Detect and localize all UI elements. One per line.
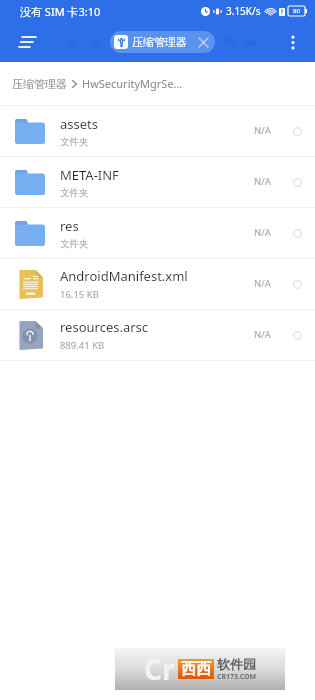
button[interactable]: res: [0, 208, 315, 258]
staticText: N/A: [254, 328, 271, 341]
staticText: N/A: [254, 175, 271, 188]
staticText: 没有 SIM 卡3:10: [20, 4, 101, 19]
button[interactable]: 压缩管理器: [110, 31, 215, 53]
staticText: N/A: [254, 226, 271, 239]
staticText: 压缩管理器: [132, 35, 187, 49]
staticText: 文件夹: [60, 136, 89, 148]
button[interactable]: Messages: [219, 32, 239, 52]
staticText: N/A: [254, 124, 271, 137]
button[interactable]: Menu: [10, 25, 44, 59]
button[interactable]: HwSecurityMgrSe…: [82, 76, 183, 91]
button[interactable]: Select res: [287, 223, 307, 243]
button[interactable]: Close tab: [195, 34, 211, 50]
button[interactable]: Select META-INF: [287, 172, 307, 192]
staticText: META-INF: [60, 166, 119, 184]
staticText: 889.41 KB: [60, 339, 105, 352]
button[interactable]: Apps tab: [86, 32, 106, 52]
staticText: N/A: [254, 277, 271, 290]
staticText: 压缩管理器: [12, 77, 67, 91]
button[interactable]: Select AndroidManifest.xml: [287, 274, 307, 294]
button[interactable]: META-INF: [0, 157, 315, 207]
button[interactable]: Cloud: [241, 32, 261, 52]
staticText: 文件夹: [60, 187, 89, 199]
button[interactable]: 压缩管理器: [12, 77, 67, 91]
button[interactable]: Select resources.arsc: [287, 325, 307, 345]
staticText: AndroidManifest.xml: [60, 267, 188, 285]
staticText: 3.15K/s: [226, 4, 261, 18]
staticText: resources.arsc: [60, 318, 149, 336]
staticText: 16.15 KB: [60, 288, 99, 301]
staticText: res: [60, 217, 79, 235]
button[interactable]: resources.arsc: [0, 310, 315, 360]
button[interactable]: More options: [277, 26, 309, 58]
staticText: 文件夹: [60, 238, 89, 250]
staticText: CR173.COM: [217, 672, 257, 682]
staticText: HwSecurityMgrSe…: [82, 76, 183, 91]
staticText: 西西: [181, 660, 211, 679]
button[interactable]: AndroidManifest.xml: [0, 259, 315, 309]
staticText: Cr: [144, 650, 175, 688]
button[interactable]: assets: [0, 106, 315, 156]
staticText: 软件园: [217, 656, 256, 672]
staticText: 80: [293, 7, 300, 15]
button[interactable]: Home: [62, 31, 84, 53]
staticText: assets: [60, 115, 98, 133]
button[interactable]: Select assets: [287, 121, 307, 141]
